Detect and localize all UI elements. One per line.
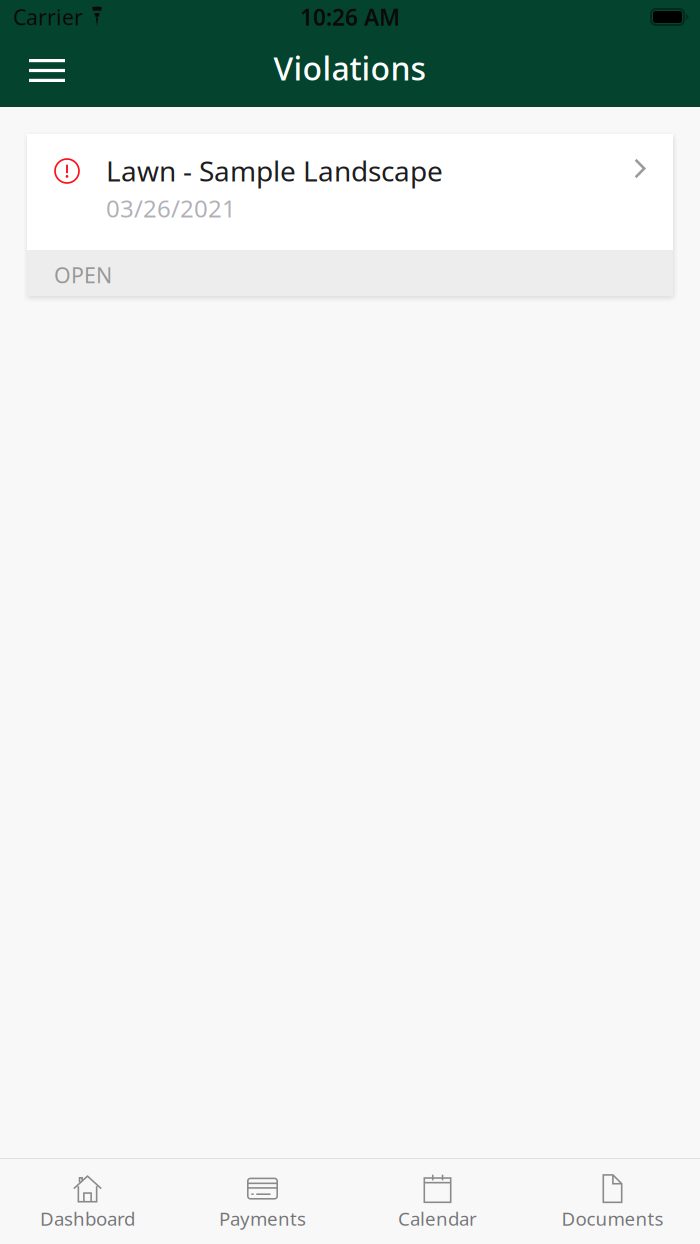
staticText: Lawn - Sample Landscape (106, 152, 443, 189)
button[interactable]: Dashboard (0, 1155, 175, 1244)
staticText: Violations (273, 47, 426, 89)
staticText: OPEN (54, 261, 112, 289)
button[interactable]: Lawn - Sample Landscape (27, 134, 673, 250)
staticText: 10:26 AM (300, 2, 400, 32)
staticText: Documents (561, 1206, 663, 1231)
staticText: Dashboard (40, 1206, 135, 1231)
staticText: Carrier (13, 3, 83, 31)
button[interactable]: Payments (175, 1155, 350, 1244)
staticText: Payments (219, 1206, 306, 1231)
button[interactable]: Calendar (350, 1155, 525, 1244)
button[interactable]: Documents (525, 1155, 700, 1244)
staticText: Calendar (398, 1206, 477, 1231)
staticText: 03/26/2021 (106, 192, 236, 224)
button[interactable]: Menu (0, 45, 85, 96)
